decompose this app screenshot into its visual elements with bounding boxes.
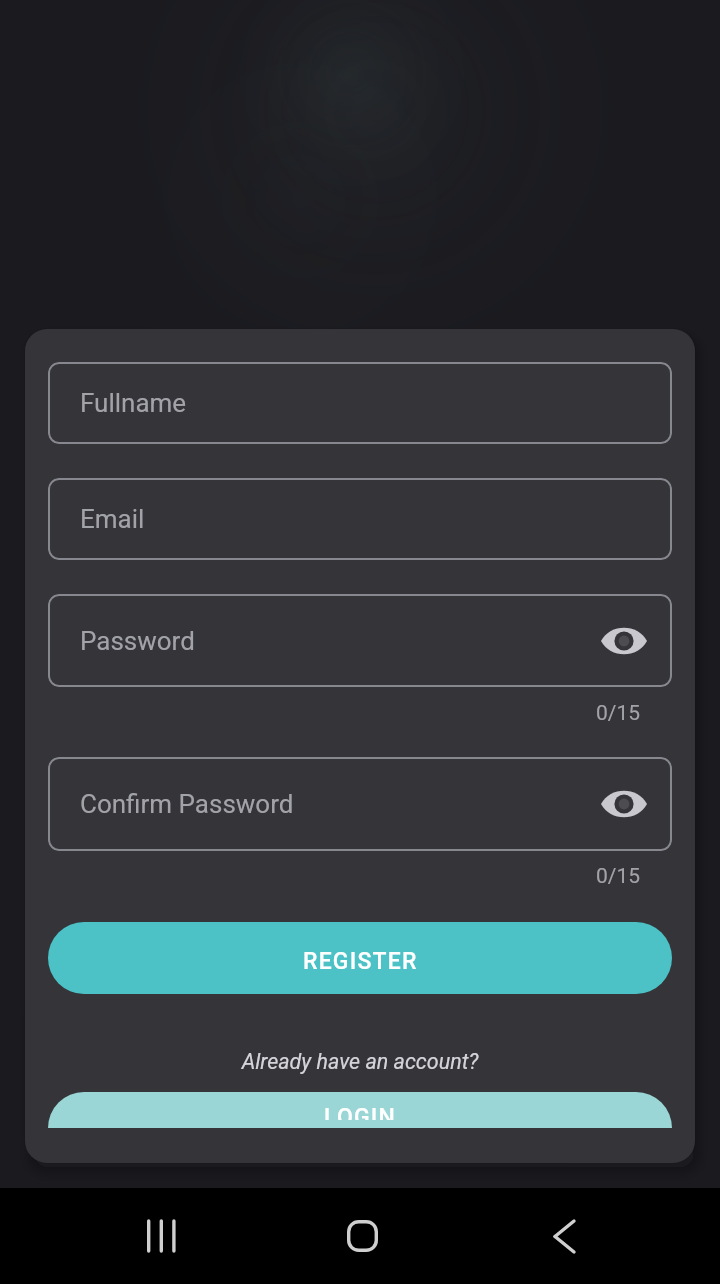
button[interactable]: Back <box>516 1188 612 1284</box>
staticText: Email <box>80 504 145 534</box>
button[interactable]: LOGIN <box>48 1092 672 1128</box>
button[interactable]: Show password <box>598 615 650 667</box>
staticText: REGISTER <box>303 948 418 975</box>
staticText: Confirm Password <box>80 789 294 819</box>
button[interactable]: Email <box>48 478 672 560</box>
staticText: LOGIN <box>324 1104 397 1120</box>
staticText: Already have an account? <box>48 1049 672 1074</box>
button[interactable]: Home <box>314 1188 410 1284</box>
button[interactable]: REGISTER <box>48 922 672 994</box>
button[interactable]: Recent apps <box>113 1188 209 1284</box>
staticText: Password <box>80 626 195 656</box>
staticText: Fullname <box>80 388 187 418</box>
staticText: 0/15 <box>48 701 640 726</box>
button[interactable]: Fullname <box>48 362 672 444</box>
button[interactable]: Password <box>48 594 672 687</box>
button[interactable]: Show password <box>598 778 650 830</box>
button[interactable]: Confirm Password <box>48 757 672 851</box>
staticText: 0/15 <box>48 864 640 889</box>
